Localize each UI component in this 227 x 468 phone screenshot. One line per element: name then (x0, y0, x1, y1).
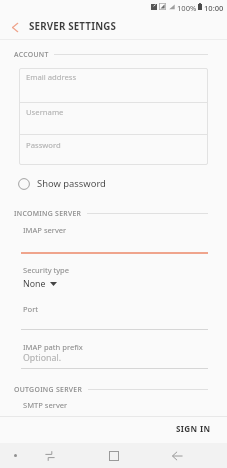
button[interactable]: IMAP server (21, 225, 208, 253)
button[interactable]: Recent apps (32, 443, 68, 468)
button[interactable]: Show password (18, 176, 106, 191)
button[interactable]: Navigate up (3, 16, 27, 39)
button[interactable]: Port (21, 304, 208, 330)
staticText: Security type (23, 265, 70, 275)
staticText: SIGN IN (176, 423, 211, 434)
staticText: Show password (37, 177, 106, 190)
staticText: IMAP server (23, 225, 67, 235)
staticText: Password (26, 140, 61, 150)
button[interactable]: IMAP path prefix (21, 342, 208, 369)
button[interactable]: Show menu (1, 443, 29, 468)
staticText: OUTGOING SERVER (14, 385, 83, 394)
button[interactable]: Home (95, 443, 132, 468)
staticText: ACCOUNT (14, 50, 49, 59)
button[interactable]: SIGN IN (156, 415, 227, 441)
staticText: SERVER SETTINGS (29, 20, 117, 33)
staticText: 10:00 (204, 3, 224, 13)
button[interactable]: Security type (23, 265, 70, 277)
staticText: Optional. (23, 352, 62, 364)
staticText: SMTP server (23, 400, 68, 410)
staticText: INCOMING SERVER (14, 209, 82, 218)
staticText: Email address (26, 72, 77, 82)
staticText: Username (26, 107, 64, 117)
button[interactable]: Email address (19, 68, 208, 102)
button[interactable]: Back (159, 443, 196, 468)
button[interactable]: Username (19, 102, 208, 134)
button[interactable]: Password (19, 134, 208, 165)
staticText: 100% (177, 3, 197, 13)
staticText: Port (23, 304, 39, 314)
staticText: None (23, 278, 46, 290)
staticText: IMAP path prefix (23, 342, 83, 352)
